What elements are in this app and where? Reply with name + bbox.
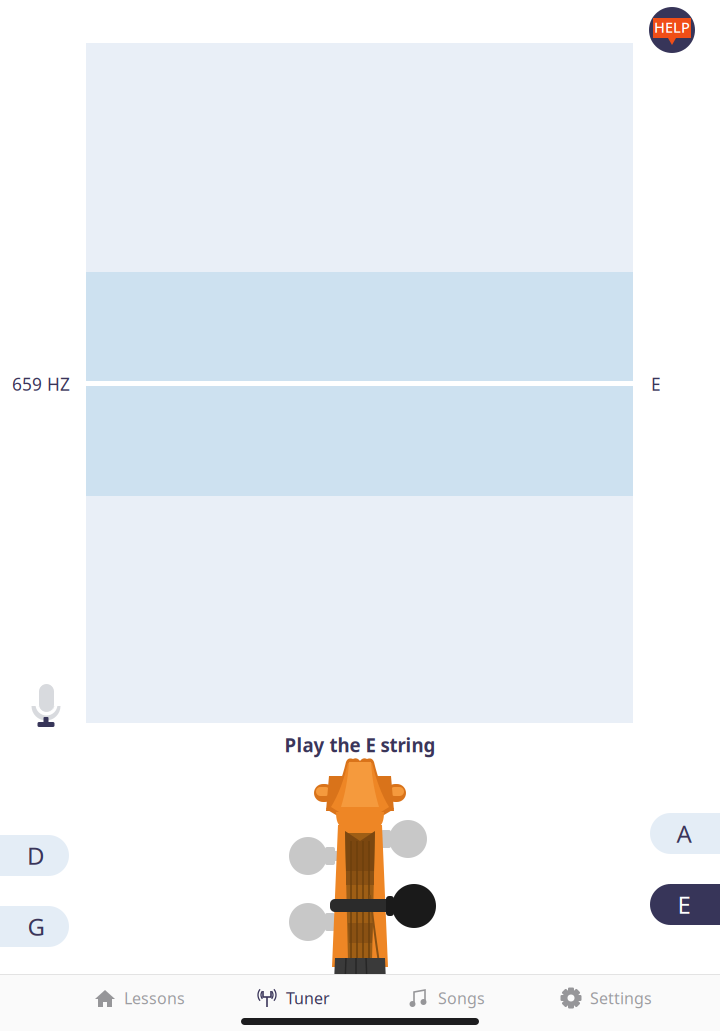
- staticText: Lessons: [124, 987, 185, 1009]
- staticText: 659 HZ: [12, 372, 70, 395]
- staticText: Songs: [438, 987, 485, 1009]
- staticText: HELP: [654, 17, 690, 37]
- staticText: G: [27, 911, 44, 942]
- staticText: A: [676, 818, 691, 849]
- button[interactable]: Help: [649, 7, 695, 53]
- button[interactable]: G: [0, 906, 69, 947]
- button[interactable]: Songs: [398, 975, 495, 1021]
- button[interactable]: E: [650, 884, 720, 925]
- staticText: Settings: [590, 987, 652, 1009]
- button[interactable]: Settings: [550, 975, 662, 1021]
- staticText: D: [27, 840, 45, 871]
- staticText: E: [651, 372, 661, 395]
- button[interactable]: Lessons: [84, 975, 195, 1021]
- staticText: Tuner: [286, 987, 330, 1009]
- button[interactable]: D: [0, 835, 69, 876]
- button[interactable]: A: [650, 813, 720, 854]
- staticText: Play the E string: [284, 733, 435, 757]
- staticText: E: [677, 889, 690, 920]
- button[interactable]: Tuner: [246, 975, 340, 1021]
